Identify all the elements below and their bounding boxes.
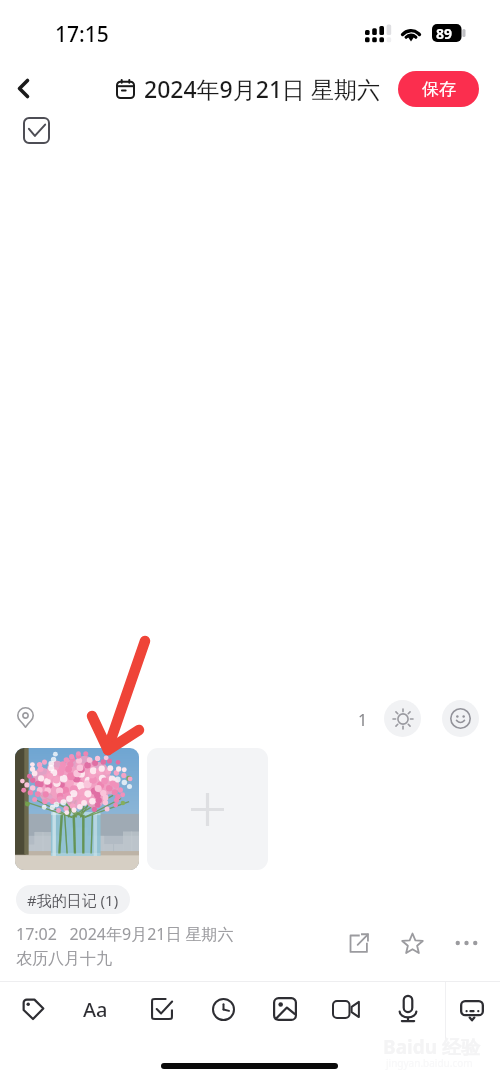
button[interactable]: Image bbox=[261, 985, 309, 1033]
button[interactable]: Checklist bbox=[138, 985, 186, 1033]
button[interactable]: #我的日记 (1) bbox=[16, 885, 130, 914]
button[interactable]: Video bbox=[322, 985, 370, 1033]
staticText: 1 bbox=[358, 709, 368, 731]
button[interactable]: Photo bbox=[15, 748, 139, 870]
button[interactable]: Reminder bbox=[199, 985, 247, 1033]
staticText: 农历八月十九 bbox=[16, 949, 112, 969]
button[interactable]: Checkbox bbox=[23, 117, 50, 144]
staticText: 89 bbox=[436, 24, 453, 42]
button[interactable]: Text style bbox=[71, 985, 119, 1033]
button[interactable]: 保存 bbox=[398, 71, 479, 107]
staticText: 保存 bbox=[422, 79, 456, 100]
staticText: Aa bbox=[83, 996, 108, 1023]
button[interactable]: Weather bbox=[384, 700, 421, 737]
staticText: 17:02 2024年9月21日 星期六 bbox=[16, 923, 234, 945]
button[interactable]: Hide keyboard bbox=[448, 985, 496, 1033]
button[interactable]: Tag bbox=[9, 985, 57, 1033]
button[interactable]: Back bbox=[5, 70, 41, 106]
staticText: Baidu 经验 bbox=[383, 1034, 480, 1060]
button[interactable]: Location bbox=[10, 702, 40, 732]
button[interactable]: Mood bbox=[442, 700, 479, 737]
button[interactable]: More bbox=[448, 925, 484, 961]
button[interactable]: Voice bbox=[384, 985, 432, 1033]
button[interactable]: Favorite bbox=[394, 925, 430, 961]
staticText: 2024年9月21日 星期六 bbox=[144, 73, 381, 104]
button[interactable]: Share bbox=[340, 925, 376, 961]
staticText: #我的日记 (1) bbox=[27, 890, 119, 910]
staticText: 17:15 bbox=[55, 20, 109, 49]
